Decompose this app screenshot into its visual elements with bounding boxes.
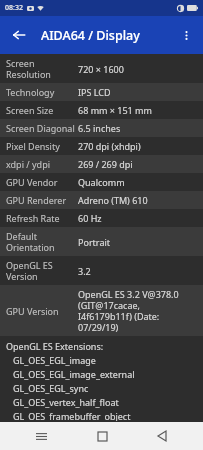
button[interactable]: GPU Vendor xyxy=(0,173,203,191)
button[interactable]: OpenGL ES Version xyxy=(0,256,203,285)
staticText: 60 Hz xyxy=(78,212,199,224)
button[interactable]: Navigate up xyxy=(0,16,38,54)
button[interactable]: Technology xyxy=(0,83,203,101)
button[interactable]: Home xyxy=(82,422,122,450)
button[interactable]: Screen Diagonal xyxy=(0,119,203,137)
staticText: IPS LCD xyxy=(78,86,199,98)
staticText: GL_OES_EGL_image_external xyxy=(13,368,203,380)
button[interactable]: Recent apps xyxy=(21,422,61,450)
staticText: GL_OES_EGL_sync xyxy=(13,382,203,394)
staticText: Adreno (TM) 610 xyxy=(78,194,199,206)
staticText: 270 dpi (xhdpi) xyxy=(78,140,199,152)
staticText: 68 mm × 151 mm xyxy=(78,104,199,116)
staticText: GPU Renderer xyxy=(6,194,78,206)
button[interactable]: Back xyxy=(142,422,182,450)
staticText: Screen Size xyxy=(6,104,78,116)
staticText: 6.5 inches xyxy=(78,122,199,134)
staticText: Screen Resolution xyxy=(6,57,78,80)
staticText: OpenGL ES 3.2 V@378.0 (GIT@17cacae, I4f6… xyxy=(78,288,199,333)
staticText: GPU Vendor xyxy=(6,176,78,188)
staticText: Qualcomm xyxy=(78,176,199,188)
button[interactable]: Refresh Rate xyxy=(0,209,203,227)
button[interactable]: More options xyxy=(169,18,203,52)
staticText: OpenGL ES Version xyxy=(6,259,78,282)
staticText: Refresh Rate xyxy=(6,212,78,224)
staticText: 269 / 269 dpi xyxy=(78,158,199,170)
button[interactable]: Pixel Density xyxy=(0,137,203,155)
staticText: 08:32 xyxy=(5,3,23,13)
button[interactable]: Screen Size xyxy=(0,101,203,119)
staticText: AIDA64 / Display xyxy=(41,27,140,44)
staticText: GPU Version xyxy=(6,305,78,317)
staticText: xdpi / ydpi xyxy=(6,158,78,170)
staticText: 720 × 1600 xyxy=(78,63,199,75)
staticText: Portrait xyxy=(78,236,199,248)
button[interactable]: xdpi / ydpi xyxy=(0,155,203,173)
button[interactable]: GPU Version xyxy=(0,285,203,336)
staticText: Screen Diagonal xyxy=(6,122,78,134)
staticText: Default Orientation xyxy=(6,230,78,253)
button[interactable]: Screen Resolution xyxy=(0,54,203,83)
button[interactable]: Default Orientation xyxy=(0,227,203,256)
staticText: GL_OES_framebuffer_object xyxy=(13,410,203,421)
staticText: OpenGL ES Extensions: xyxy=(6,340,104,352)
staticText: Pixel Density xyxy=(6,140,78,152)
button[interactable]: GPU Renderer xyxy=(0,191,203,209)
staticText: 3.2 xyxy=(78,265,199,277)
staticText: GL_OES_vertex_half_float xyxy=(13,396,203,408)
staticText: GL_OES_EGL_image xyxy=(13,354,203,366)
staticText: Technology xyxy=(6,86,78,98)
